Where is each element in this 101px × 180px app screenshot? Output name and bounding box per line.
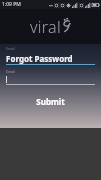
staticText: 1:09 PM <box>2 1 21 8</box>
staticText: viral <box>30 16 61 38</box>
staticText: Email <box>6 69 15 74</box>
button[interactable]: Submit <box>6 93 95 109</box>
staticText: Submit <box>36 96 65 107</box>
button[interactable]: Forgot Password <box>6 52 95 64</box>
button[interactable] <box>6 75 95 84</box>
staticText: Email <box>6 46 15 51</box>
staticText: Forgot Password <box>6 53 73 64</box>
